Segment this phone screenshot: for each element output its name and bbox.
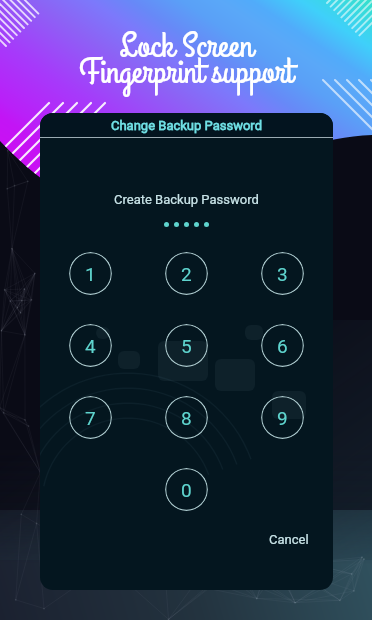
staticText: Lock Screen [119,22,253,71]
staticText: 8 [181,407,192,429]
staticText: 7 [85,407,96,429]
staticText: Change Backup Password [111,118,262,133]
staticText: 0 [181,479,192,501]
button[interactable]: 8 [165,396,208,439]
button[interactable]: 0 [165,468,208,511]
button[interactable]: 2 [165,252,208,295]
button[interactable]: 3 [261,252,304,295]
staticText: 2 [181,263,192,285]
staticText: Cancel [269,532,309,547]
staticText: 4 [85,335,96,357]
staticText: 9 [277,407,288,429]
button[interactable]: 4 [69,324,112,367]
staticText: Create Backup Password [114,192,259,207]
button[interactable]: Cancel [265,528,313,551]
button[interactable]: 5 [165,324,208,367]
staticText: 3 [277,263,288,285]
staticText: 1 [85,263,96,285]
staticText: 6 [277,335,288,357]
button[interactable]: 9 [261,396,304,439]
button[interactable]: 7 [69,396,112,439]
button[interactable]: 6 [261,324,304,367]
button[interactable]: 1 [69,252,112,295]
staticText: 5 [181,335,192,357]
staticText: Fingerprint support [79,48,293,97]
